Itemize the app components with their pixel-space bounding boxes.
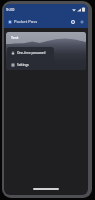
staticText: Test [11,35,19,40]
staticText: Settings [17,63,29,67]
button[interactable]: App logo [8,20,12,24]
staticText: One-time password [17,51,46,55]
button[interactable]: One-time password [7,47,54,59]
button[interactable]: Settings [7,59,54,70]
button[interactable]: Add pass [80,20,84,24]
staticText: Pocket Pass [14,19,38,25]
staticText: 9:30 [6,7,15,13]
button[interactable]: Account [71,20,75,24]
